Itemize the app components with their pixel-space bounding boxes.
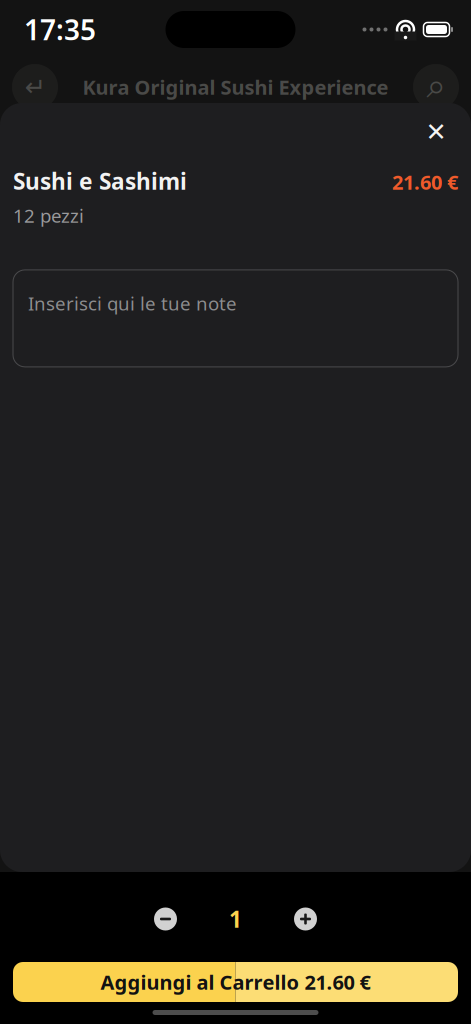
staticText: ⌕ (426, 70, 445, 104)
staticText: Inserisci qui le tue note (28, 291, 237, 316)
staticText: 17:35 (24, 11, 96, 48)
staticText: Kura Original Sushi Experience (82, 74, 388, 100)
staticText: 1 (229, 904, 242, 934)
staticText: ↵ (24, 73, 45, 101)
staticText: 21.60 € (392, 169, 458, 195)
staticText: Sushi e Sashimi (13, 166, 187, 196)
button[interactable]: Close (414, 110, 458, 154)
button[interactable]: Decrease quantity (147, 901, 183, 937)
button[interactable]: Aggiungi al Carrello 21.60 € (13, 962, 458, 1002)
staticText: ✕ (425, 118, 446, 146)
button[interactable]: Back (12, 64, 58, 110)
button[interactable]: Search (413, 64, 459, 110)
staticText: Aggiungi al Carrello 21.60 € (100, 969, 370, 995)
button[interactable]: Inserisci qui le tue note (13, 270, 458, 367)
staticText: 12 pezzi (13, 203, 84, 228)
button[interactable]: Increase quantity (287, 901, 323, 937)
